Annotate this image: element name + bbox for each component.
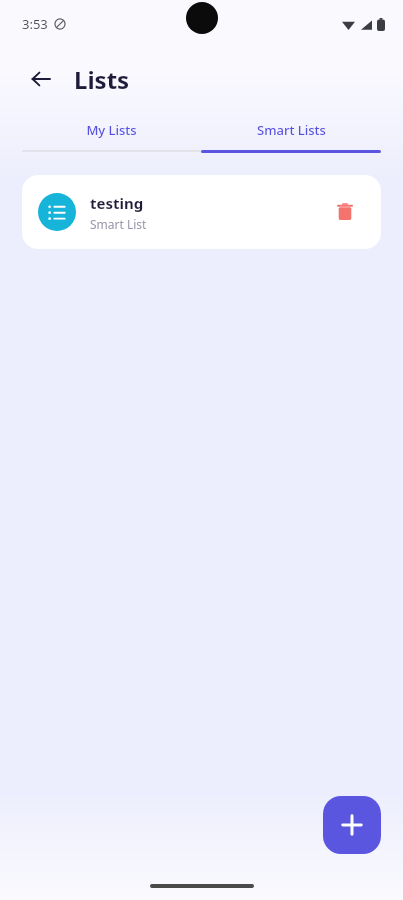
button[interactable]: Add list: [323, 796, 381, 854]
staticText: Smart Lists: [257, 121, 326, 139]
staticText: 3:53: [22, 15, 48, 33]
button[interactable]: Back: [20, 58, 62, 100]
staticText: testing: [90, 193, 144, 213]
staticText: My Lists: [86, 121, 137, 139]
staticText: Lists: [74, 63, 130, 96]
button[interactable]: Delete list: [325, 192, 365, 232]
button[interactable]: My Lists: [22, 110, 201, 150]
button[interactable]: Smart Lists: [201, 110, 381, 150]
staticText: Smart List: [90, 216, 147, 232]
button[interactable]: testing: [22, 175, 381, 249]
